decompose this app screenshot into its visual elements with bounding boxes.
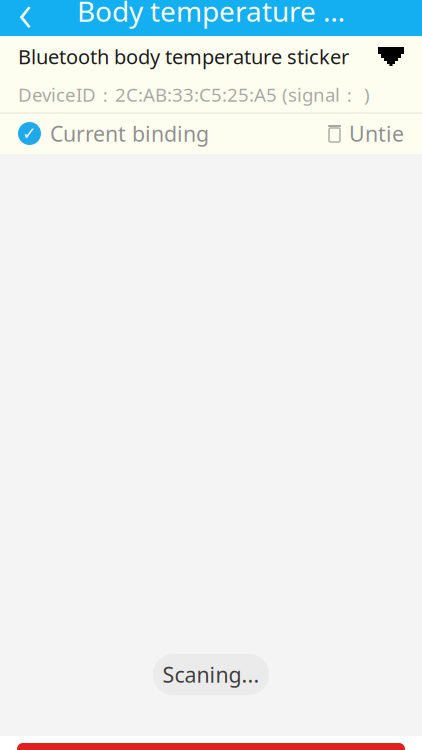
staticText: Untie: [349, 119, 404, 148]
staticText: Scaning...: [162, 660, 259, 689]
staticText: ‹: [18, 0, 32, 46]
button[interactable]: Untie: [327, 113, 404, 154]
staticText: DeviceID：2C:AB:33:C5:25:A5 (signal： ): [18, 82, 370, 107]
button[interactable]: Scanning, click Stop: [17, 743, 405, 750]
staticText: ✓: [22, 124, 37, 143]
staticText: Current binding: [50, 119, 209, 148]
button[interactable]: Back: [0, 0, 50, 36]
staticText: Bluetooth body temperature sticker: [18, 43, 349, 70]
staticText: Body temperature …: [77, 0, 345, 30]
